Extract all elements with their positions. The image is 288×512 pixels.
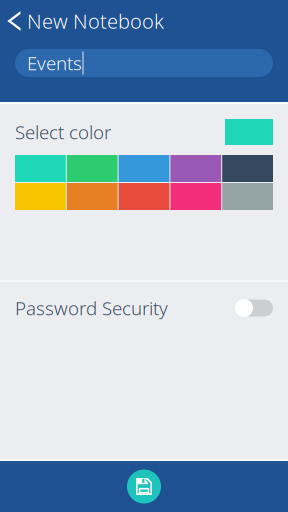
button[interactable]: Colour swatch xyxy=(67,155,118,182)
button[interactable]: Colour swatch xyxy=(222,155,273,182)
staticText: New Notebook xyxy=(27,8,164,34)
button[interactable]: Colour swatch xyxy=(67,183,118,210)
staticText: Events xyxy=(27,51,82,75)
button[interactable]: Colour swatch xyxy=(15,155,66,182)
button[interactable]: Colour swatch xyxy=(15,183,66,210)
button[interactable]: Colour swatch xyxy=(170,155,221,182)
button[interactable]: Events xyxy=(15,49,273,77)
button[interactable]: Back xyxy=(0,4,27,38)
button[interactable]: Password Security xyxy=(0,282,288,338)
button[interactable]: Save notebook xyxy=(122,464,166,508)
button[interactable]: Colour swatch xyxy=(170,183,221,210)
staticText: Password Security xyxy=(15,296,168,320)
staticText: Select color xyxy=(15,120,111,144)
